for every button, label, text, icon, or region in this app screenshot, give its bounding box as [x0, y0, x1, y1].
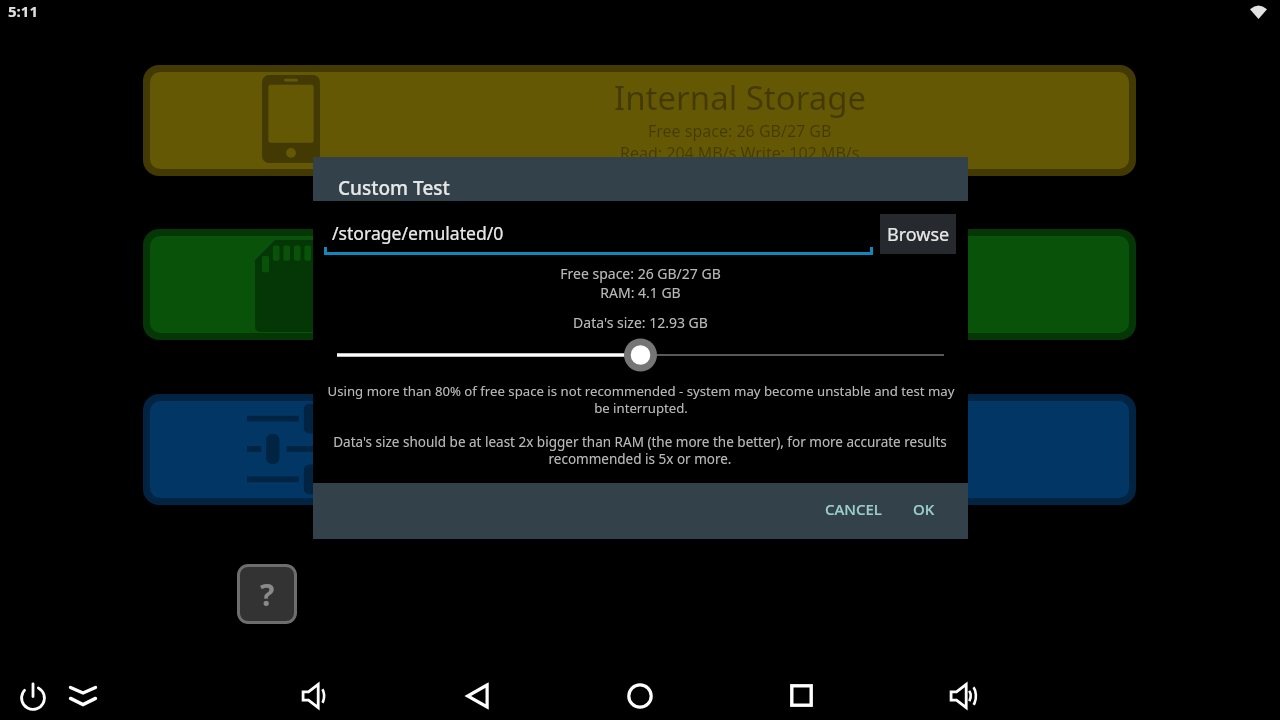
staticText: Using more than 80% of free space is not… — [320, 382, 962, 416]
button[interactable]: CANCEL — [811, 489, 895, 529]
staticText: Internal Storage — [614, 75, 867, 120]
staticText: SD Card — [678, 239, 802, 284]
button[interactable]: SD Card — [143, 229, 1136, 340]
staticText: Data's size: 12.93 GB — [313, 313, 968, 332]
button[interactable]: Browse — [880, 214, 956, 254]
button[interactable]: OK — [899, 489, 949, 529]
staticText: Free space: 26 GB/27 GB — [313, 264, 968, 283]
button[interactable]: Expand quick settings — [69, 686, 97, 706]
staticText: Data's size should be at least 2x bigger… — [325, 433, 955, 468]
button[interactable]: Home — [627, 683, 653, 709]
staticText: OK — [913, 499, 935, 519]
button[interactable]: Recent apps — [790, 684, 813, 707]
staticText: Free space: 26 GB/27 GB — [648, 120, 832, 142]
staticText: /storage/emulated/0 — [332, 221, 504, 245]
staticText: 5:11 — [8, 1, 38, 21]
staticText: RAM: 4.1 GB — [313, 283, 968, 302]
staticText: CANCEL — [825, 499, 882, 519]
staticText: ? — [260, 574, 275, 615]
button[interactable]: Help — [237, 564, 297, 624]
button[interactable]: Back — [466, 683, 490, 709]
button[interactable]: Internal Storage — [143, 65, 1136, 176]
other: Wi-Fi — [1250, 5, 1267, 19]
button[interactable]: Custom Test — [143, 394, 1136, 505]
staticText: Custom Test — [645, 404, 836, 449]
button[interactable]: Volume down — [302, 683, 329, 709]
staticText: Browse — [887, 222, 950, 247]
staticText: Custom Test — [338, 175, 450, 201]
button[interactable]: Data size slider — [313, 317, 968, 393]
button[interactable]: Power — [20, 682, 46, 710]
staticText: Read: 204 MB/s Write: 102 MB/s — [620, 142, 860, 164]
button[interactable]: Volume up — [950, 683, 977, 709]
